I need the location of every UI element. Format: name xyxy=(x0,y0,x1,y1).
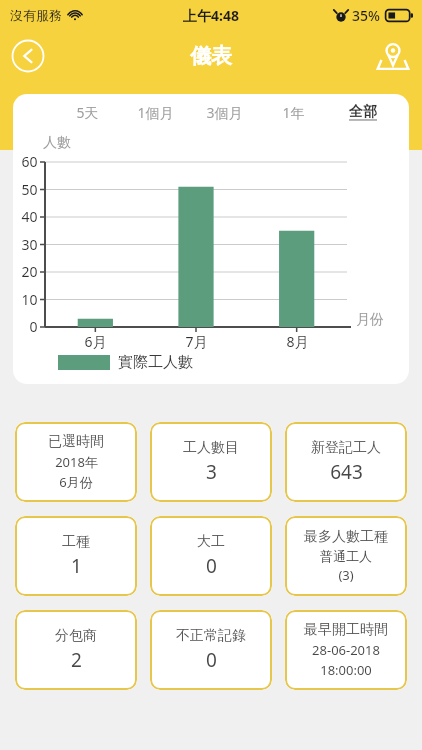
button[interactable]: 大工 xyxy=(150,516,272,596)
staticText: 40 xyxy=(21,207,38,226)
staticText: 大工 xyxy=(197,533,225,551)
button[interactable]: 1年 xyxy=(259,94,328,130)
staticText: 不正常記錄 xyxy=(176,627,246,645)
staticText: 月份 xyxy=(356,311,384,329)
staticText: 1年 xyxy=(282,103,305,122)
button[interactable]: 5天 xyxy=(53,94,121,130)
staticText: 30 xyxy=(21,235,38,254)
staticText: 分包商 xyxy=(55,627,97,645)
button[interactable]: 新登記工人 xyxy=(285,422,407,502)
button[interactable]: 工種 xyxy=(15,516,137,596)
button[interactable]: 全部 xyxy=(328,94,397,130)
staticText: 人數 xyxy=(43,134,71,152)
staticText: 1個月 xyxy=(137,103,174,122)
staticText: (3) xyxy=(338,566,354,584)
staticText: 已選時間 xyxy=(48,433,104,451)
staticText: 6月份 xyxy=(59,473,93,491)
staticText: 上午4:48 xyxy=(183,6,239,25)
staticText: 0 xyxy=(206,553,217,579)
staticText: 18:00:00 xyxy=(320,661,372,679)
button[interactable]: 3個月 xyxy=(190,94,259,130)
staticText: 35% xyxy=(352,6,380,25)
staticText: 1 xyxy=(71,553,82,579)
staticText: 實際工人數 xyxy=(118,353,193,372)
staticText: 2018年 xyxy=(55,453,98,471)
staticText: 全部 xyxy=(349,103,377,121)
staticText: 643 xyxy=(330,459,363,485)
staticText: 0 xyxy=(29,317,38,336)
button[interactable]: 不正常記錄 xyxy=(150,610,272,690)
button[interactable]: 最多人數工種 xyxy=(285,516,407,596)
button[interactable]: Back xyxy=(10,38,46,74)
staticText: 10 xyxy=(21,290,38,309)
staticText: 5天 xyxy=(76,103,99,122)
staticText: 最多人數工種 xyxy=(304,528,388,546)
staticText: 3 xyxy=(206,459,217,485)
staticText: 8月 xyxy=(286,332,309,351)
button[interactable]: 工人數目 xyxy=(150,422,272,502)
staticText: 最早開工時間 xyxy=(304,621,388,639)
staticText: 2 xyxy=(71,647,82,673)
button[interactable]: 最早開工時間 xyxy=(285,610,407,690)
staticText: 0 xyxy=(206,647,217,673)
button[interactable]: 1個月 xyxy=(121,94,190,130)
staticText: 50 xyxy=(21,180,38,199)
staticText: 沒有服務 xyxy=(10,7,62,23)
button[interactable]: 已選時間 xyxy=(15,422,137,502)
staticText: 20 xyxy=(21,262,38,281)
button[interactable]: 分包商 xyxy=(15,610,137,690)
staticText: 工種 xyxy=(62,533,90,551)
staticText: 新登記工人 xyxy=(311,439,381,457)
staticText: 普通工人 xyxy=(320,548,372,564)
staticText: 儀表 xyxy=(190,43,232,69)
staticText: 工人數目 xyxy=(183,439,239,457)
button[interactable]: Map location xyxy=(376,39,410,73)
staticText: 60 xyxy=(21,152,38,171)
staticText: 3個月 xyxy=(206,103,243,122)
staticText: 28-06-2018 xyxy=(312,641,380,659)
staticText: 6月 xyxy=(84,332,107,351)
staticText: 7月 xyxy=(185,332,208,351)
